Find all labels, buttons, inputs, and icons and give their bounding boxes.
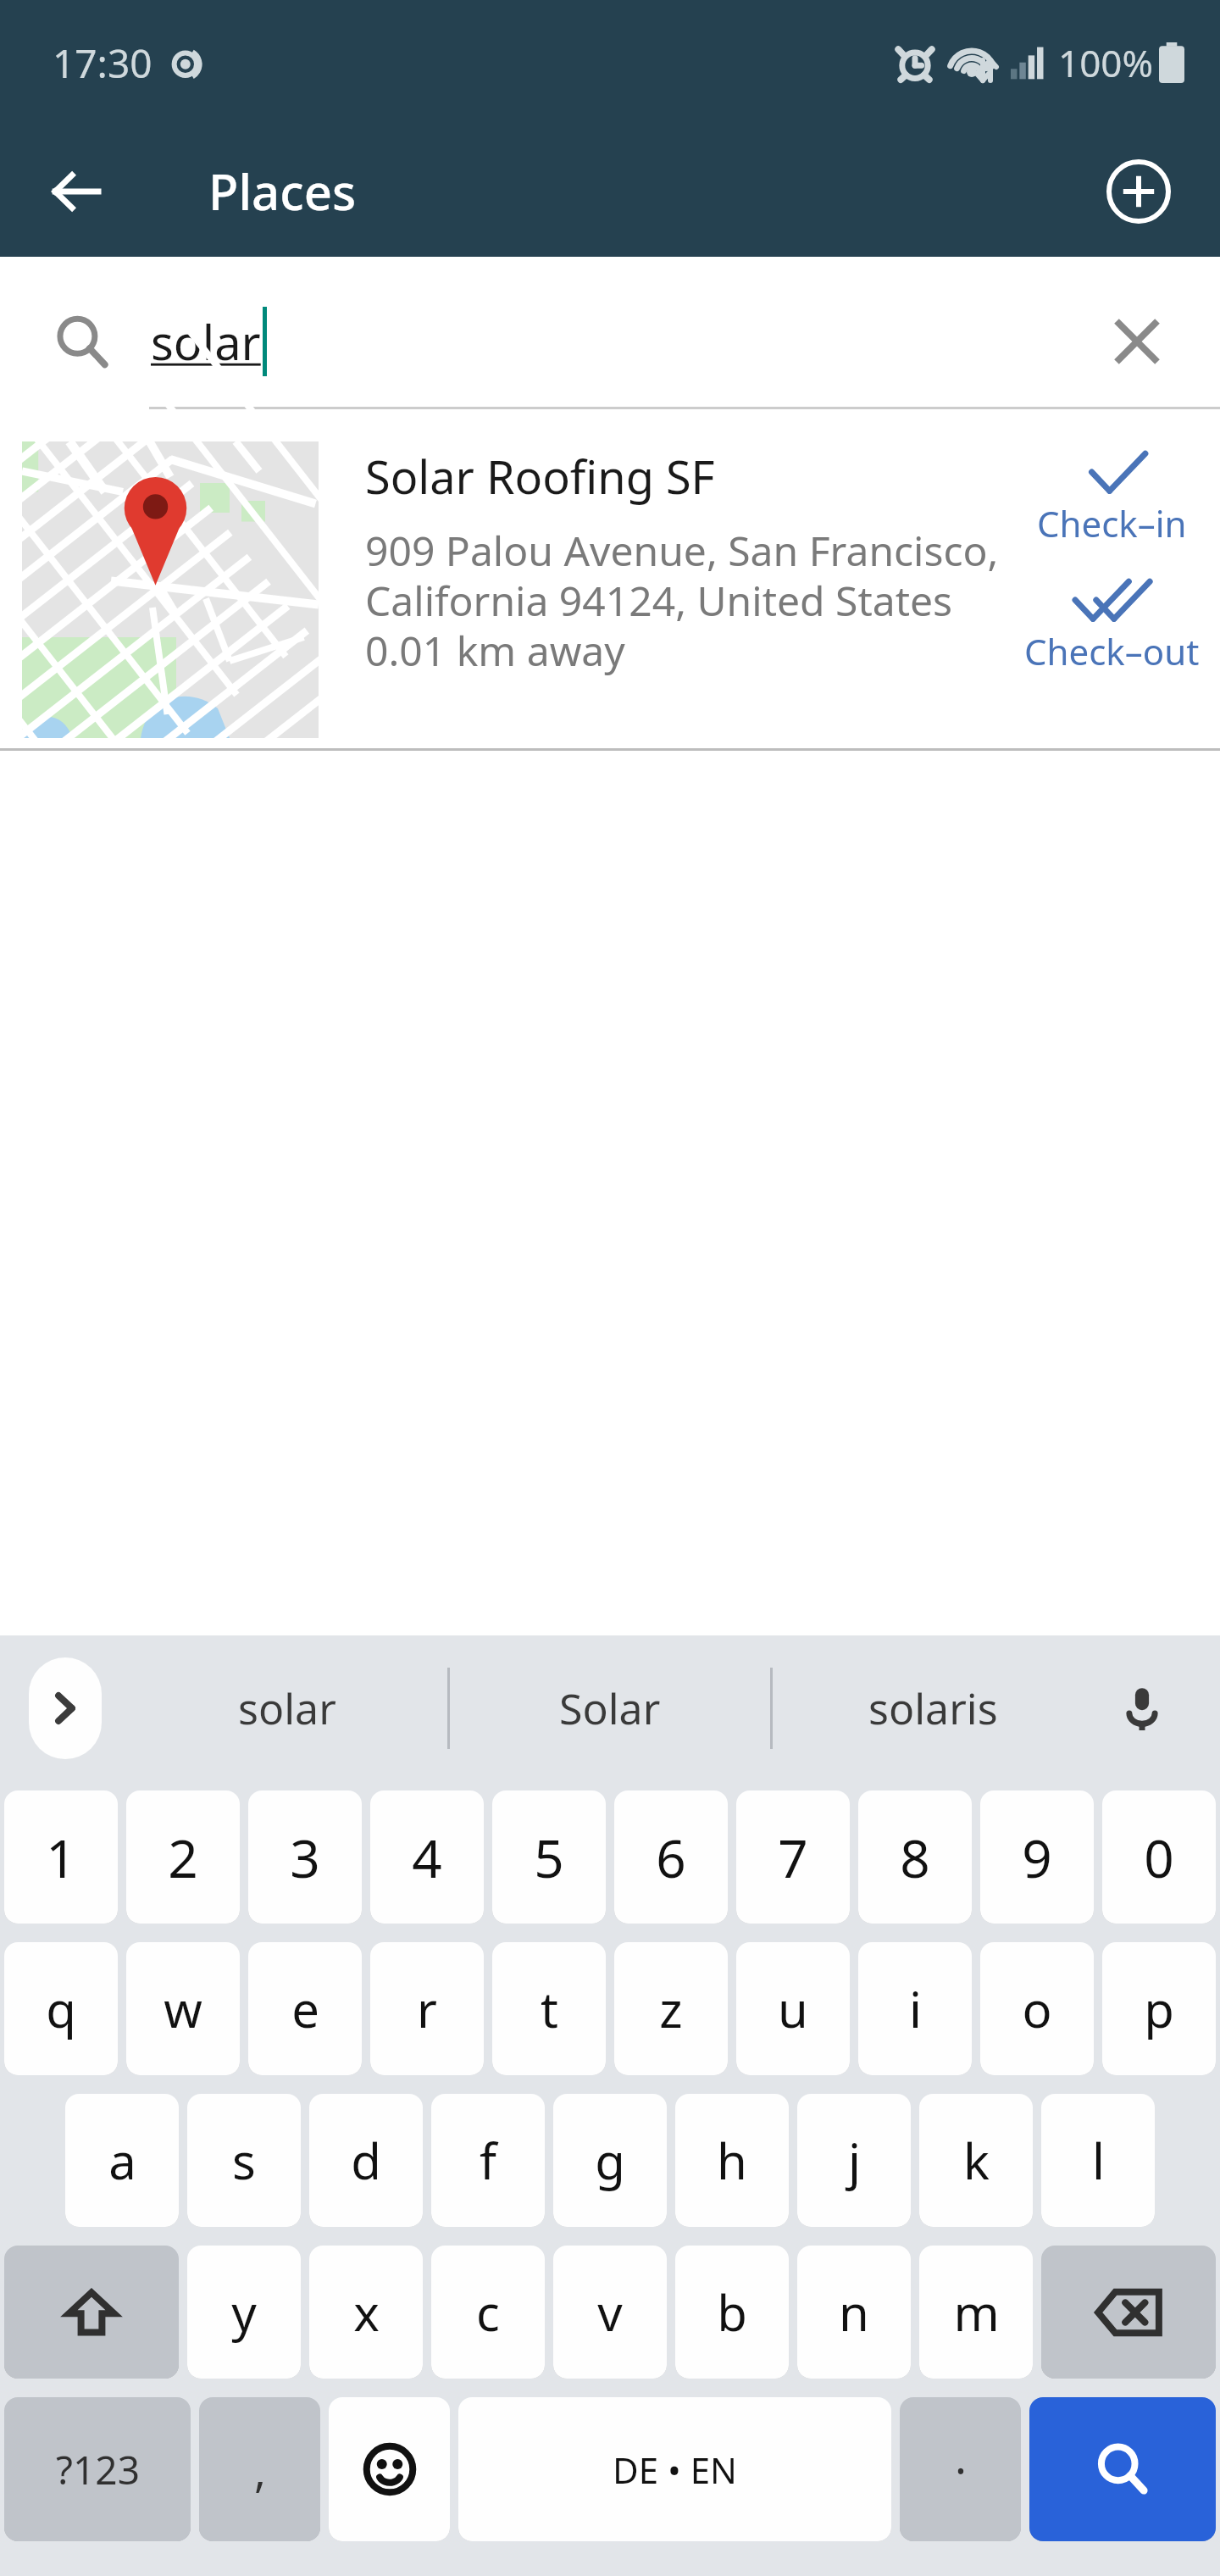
- staticText: DE • EN: [613, 2446, 737, 2494]
- staticText: Solar Roofing SF: [365, 445, 715, 508]
- button[interactable]: i: [858, 1942, 972, 2075]
- staticText: ·: [955, 2440, 967, 2500]
- staticText: d: [351, 2127, 381, 2194]
- button[interactable]: y: [187, 2246, 301, 2379]
- staticText: z: [659, 1975, 683, 2042]
- button[interactable]: v: [553, 2246, 667, 2379]
- button[interactable]: p: [1102, 1942, 1216, 2075]
- button[interactable]: Backspace: [1041, 2246, 1216, 2379]
- staticText: e: [291, 1975, 319, 2042]
- button[interactable]: DE • EN: [458, 2397, 891, 2541]
- button[interactable]: 2: [126, 1790, 240, 1924]
- button[interactable]: 1: [4, 1790, 118, 1924]
- button[interactable]: solar: [127, 1635, 447, 1781]
- button[interactable]: Clear search: [1093, 297, 1181, 386]
- staticText: i: [909, 1975, 922, 2042]
- staticText: solaris: [868, 1679, 998, 1737]
- button[interactable]: d: [309, 2094, 423, 2227]
- button[interactable]: 6: [614, 1790, 728, 1924]
- staticText: solar: [238, 1679, 336, 1737]
- staticText: 0: [1144, 1822, 1174, 1893]
- staticText: ,: [254, 2440, 266, 2500]
- staticText: 1: [46, 1822, 76, 1893]
- staticText: v: [597, 2279, 623, 2346]
- button[interactable]: n: [797, 2246, 911, 2379]
- staticText: Check–out: [1024, 627, 1200, 675]
- staticText: 4: [412, 1822, 442, 1893]
- button[interactable]: b: [675, 2246, 789, 2379]
- button[interactable]: Check–in: [1032, 441, 1192, 551]
- staticText: j: [848, 2127, 861, 2194]
- button[interactable]: c: [431, 2246, 545, 2379]
- staticText: n: [839, 2279, 869, 2346]
- staticText: 100%: [1058, 37, 1154, 88]
- staticText: 909 Palou Avenue, San Francisco, Califor…: [365, 523, 999, 678]
- button[interactable]: 8: [858, 1790, 972, 1924]
- staticText: 17:30: [53, 36, 152, 90]
- button[interactable]: s: [187, 2094, 301, 2227]
- button[interactable]: 7: [736, 1790, 850, 1924]
- staticText: 9: [1022, 1822, 1052, 1893]
- staticText: 3: [290, 1822, 320, 1893]
- staticText: solar: [151, 309, 261, 374]
- button[interactable]: u: [736, 1942, 850, 2075]
- button[interactable]: ?123: [4, 2397, 191, 2541]
- button[interactable]: t: [492, 1942, 606, 2075]
- button[interactable]: f: [431, 2094, 545, 2227]
- button[interactable]: 0: [1102, 1790, 1216, 1924]
- button[interactable]: Search: [1029, 2397, 1216, 2541]
- staticText: t: [541, 1975, 558, 2042]
- button[interactable]: e: [248, 1942, 362, 2075]
- staticText: m: [953, 2279, 1000, 2346]
- button[interactable]: Solar: [450, 1635, 770, 1781]
- staticText: b: [717, 2279, 747, 2346]
- staticText: 5: [534, 1822, 564, 1893]
- button[interactable]: Check–out: [1019, 569, 1205, 679]
- staticText: ?123: [56, 2443, 140, 2496]
- staticText: 8: [900, 1822, 930, 1893]
- button[interactable]: m: [919, 2246, 1033, 2379]
- button[interactable]: a: [65, 2094, 179, 2227]
- staticText: 7: [778, 1822, 808, 1893]
- button[interactable]: Emoji: [329, 2397, 450, 2541]
- button[interactable]: q: [4, 1942, 118, 2075]
- button[interactable]: 4: [370, 1790, 484, 1924]
- button[interactable]: h: [675, 2094, 789, 2227]
- staticText: r: [417, 1975, 437, 2042]
- button[interactable]: ,: [199, 2397, 320, 2541]
- staticText: l: [1092, 2127, 1105, 2194]
- staticText: Check–in: [1037, 499, 1187, 547]
- staticText: y: [231, 2279, 257, 2346]
- staticText: Solar: [559, 1679, 661, 1737]
- other: Search: [56, 315, 108, 368]
- button[interactable]: Voice input: [1101, 1668, 1183, 1749]
- staticText: Places: [208, 158, 357, 225]
- staticText: h: [717, 2127, 747, 2194]
- button[interactable]: Solar Roofing SF: [0, 426, 1220, 748]
- staticText: a: [108, 2127, 136, 2194]
- button[interactable]: Back: [29, 144, 124, 239]
- button[interactable]: Shift: [4, 2246, 179, 2379]
- staticText: 6: [656, 1822, 686, 1893]
- button[interactable]: ·: [900, 2397, 1021, 2541]
- button[interactable]: x: [309, 2246, 423, 2379]
- button[interactable]: g: [553, 2094, 667, 2227]
- staticText: f: [480, 2127, 496, 2194]
- button[interactable]: z: [614, 1942, 728, 2075]
- button[interactable]: o: [980, 1942, 1094, 2075]
- button[interactable]: w: [126, 1942, 240, 2075]
- staticText: u: [778, 1975, 808, 2042]
- button[interactable]: Add place: [1091, 144, 1186, 239]
- button[interactable]: r: [370, 1942, 484, 2075]
- button[interactable]: k: [919, 2094, 1033, 2227]
- button[interactable]: 9: [980, 1790, 1094, 1924]
- button[interactable]: solaris: [773, 1635, 1093, 1781]
- button[interactable]: l: [1041, 2094, 1155, 2227]
- staticText: q: [46, 1975, 76, 2042]
- button[interactable]: More suggestions: [29, 1657, 102, 1759]
- button[interactable]: 5: [492, 1790, 606, 1924]
- staticText: p: [1144, 1975, 1174, 2042]
- button[interactable]: j: [797, 2094, 911, 2227]
- button[interactable]: 3: [248, 1790, 362, 1924]
- staticText: k: [963, 2127, 990, 2194]
